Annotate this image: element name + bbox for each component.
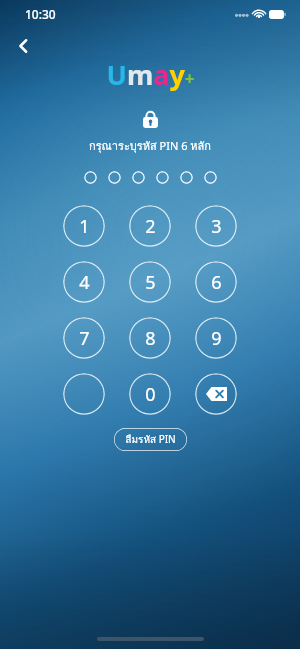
button[interactable]: 9 (195, 317, 237, 359)
staticText: 4 (79, 270, 90, 295)
button[interactable]: 7 (63, 317, 105, 359)
staticText: 10:30 (25, 6, 56, 22)
staticText: 8 (145, 326, 156, 351)
button[interactable]: 4 (63, 261, 105, 303)
button[interactable]: 5 (129, 261, 171, 303)
staticText: 3 (211, 214, 222, 239)
button[interactable]: Blank (63, 373, 105, 415)
button[interactable]: ลืมรหัส PIN (114, 428, 187, 451)
staticText: ลืมรหัส PIN (125, 432, 176, 448)
staticText: 6 (211, 270, 222, 295)
staticText: 1 (79, 214, 90, 239)
button[interactable]: 3 (195, 205, 237, 247)
staticText: 9 (211, 326, 222, 351)
button[interactable]: 8 (129, 317, 171, 359)
button[interactable]: Back (8, 30, 40, 62)
staticText: 0 (145, 382, 156, 407)
button[interactable]: 1 (63, 205, 105, 247)
staticText: กรุณาระบุรหัส PIN 6 หลัก (89, 137, 211, 154)
button[interactable]: Delete (195, 373, 237, 415)
button[interactable]: 2 (129, 205, 171, 247)
staticText: 5 (145, 270, 156, 295)
staticText: 2 (145, 214, 156, 239)
staticText: 7 (79, 326, 90, 351)
button[interactable]: 0 (129, 373, 171, 415)
button[interactable]: 6 (195, 261, 237, 303)
staticText: Umay+ (106, 56, 195, 93)
